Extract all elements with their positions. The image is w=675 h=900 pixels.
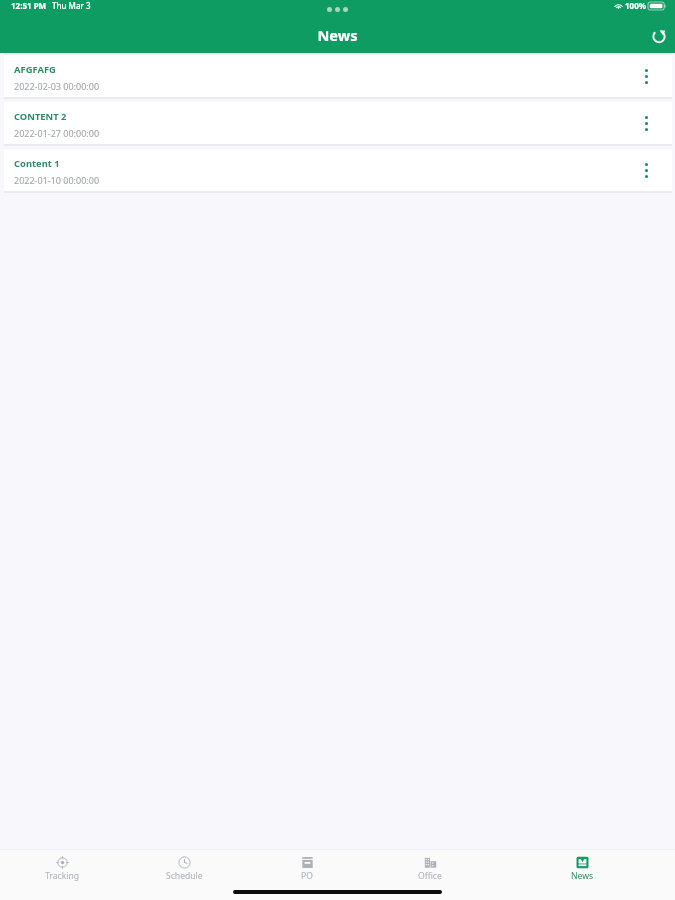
staticText: Content 1 — [14, 157, 60, 170]
staticText: News — [571, 870, 594, 882]
staticText: 2022-02-03 00:00:00 — [14, 80, 100, 92]
staticText: 2022-01-10 00:00:00 — [14, 174, 100, 186]
staticText: CONTENT 2 — [14, 110, 67, 123]
button[interactable]: More options — [633, 157, 659, 183]
staticText: 2022-01-27 00:00:00 — [14, 127, 100, 139]
button[interactable]: More options — [633, 63, 659, 89]
staticText: 12:51 PM — [11, 0, 47, 11]
staticText: PO — [301, 870, 313, 882]
button[interactable]: News — [490, 856, 675, 882]
staticText: Office — [418, 870, 442, 882]
button[interactable]: Content 1 — [4, 149, 672, 191]
button[interactable]: Office — [370, 856, 490, 882]
staticText: 100% — [625, 0, 646, 11]
button[interactable]: Schedule — [124, 856, 244, 882]
staticText: AFGFAFG — [14, 63, 56, 76]
staticText: News — [317, 25, 358, 45]
staticText: Thu Mar 3 — [52, 0, 91, 11]
staticText: Schedule — [166, 870, 203, 882]
button[interactable]: Refresh — [645, 22, 673, 50]
button[interactable]: AFGFAFG — [4, 55, 672, 97]
button[interactable]: CONTENT 2 — [4, 102, 672, 144]
button[interactable]: More options — [633, 110, 659, 136]
button[interactable]: PO — [244, 856, 370, 882]
button[interactable]: Tracking — [0, 856, 124, 882]
staticText: Tracking — [45, 870, 80, 882]
